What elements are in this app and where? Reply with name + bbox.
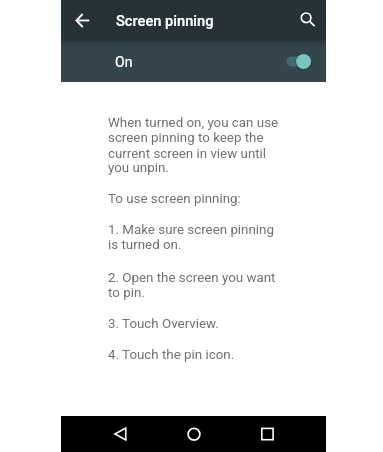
staticText: 4. Touch the pin icon. bbox=[108, 347, 235, 362]
staticText: you unpin. bbox=[108, 160, 169, 175]
staticText: To use screen pinning: bbox=[108, 191, 241, 206]
staticText: Screen pinning bbox=[116, 12, 214, 29]
button[interactable]: On bbox=[61, 40, 326, 82]
staticText: 2. Open the screen you want bbox=[108, 270, 276, 285]
staticText: to pin. bbox=[108, 285, 145, 300]
button[interactable]: Back bbox=[114, 416, 128, 452]
staticText: screen pinning to keep the bbox=[108, 130, 264, 145]
staticText: When turned on, you can use bbox=[108, 115, 279, 130]
button[interactable]: Search bbox=[286, 0, 326, 40]
staticText: On bbox=[115, 54, 133, 70]
button[interactable]: Navigate up bbox=[61, 0, 101, 40]
button[interactable]: Home bbox=[187, 416, 201, 452]
staticText: current screen in view until bbox=[108, 146, 267, 161]
staticText: is turned on. bbox=[108, 237, 182, 252]
staticText: 3. Touch Overview. bbox=[108, 316, 219, 331]
button[interactable]: Overview bbox=[260, 416, 274, 452]
staticText: 1. Make sure screen pinning bbox=[108, 222, 274, 237]
